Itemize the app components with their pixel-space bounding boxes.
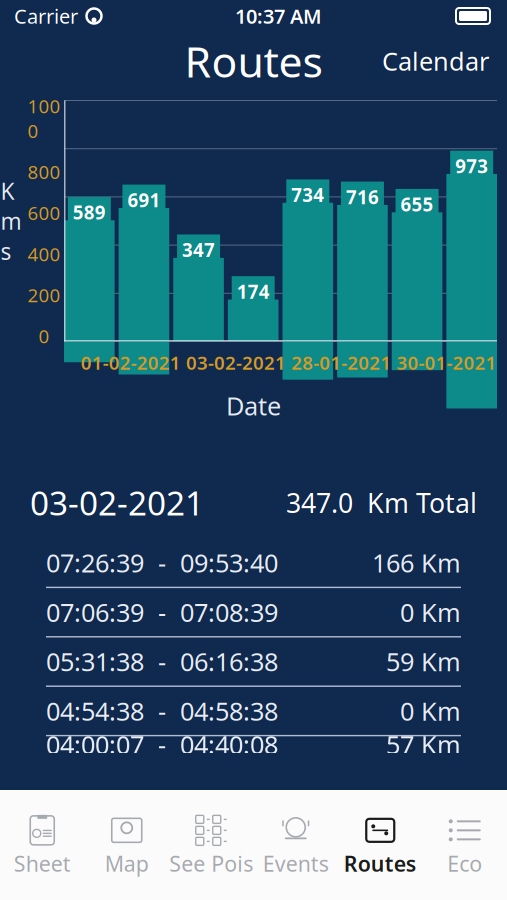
staticText: 0 Km [400, 694, 461, 728]
staticText: 04:58:38 [180, 694, 278, 728]
staticText: Events [263, 849, 329, 878]
staticText: - [144, 645, 180, 678]
button[interactable]: Routes [338, 806, 422, 884]
staticText: 200 [27, 283, 60, 307]
staticText: Km Total [353, 485, 477, 520]
button[interactable]: 05:31:38 [0, 637, 507, 687]
staticText: - [144, 595, 180, 629]
staticText: Calendar [382, 44, 489, 78]
staticText: 174 [237, 279, 270, 304]
staticText: 05:31:38 [46, 645, 144, 678]
staticText: 04:00:07 [46, 727, 144, 761]
staticText: 347 [182, 237, 215, 262]
staticText: 30-01-2021 [396, 350, 496, 375]
button[interactable]: Eco [422, 806, 507, 884]
staticText: See Pois [169, 849, 253, 878]
staticText: Carrier [14, 3, 78, 29]
staticText: Routes [344, 849, 417, 878]
staticText: 800 [27, 159, 60, 184]
staticText: 734 [291, 182, 324, 207]
staticText: - [144, 546, 180, 579]
button[interactable]: See Pois [169, 806, 253, 884]
button[interactable]: Events [253, 806, 338, 884]
staticText: - [144, 694, 180, 728]
staticText: 347.0 [286, 485, 353, 520]
staticText: 03-02-2021 [30, 480, 204, 525]
staticText: 28-01-2021 [291, 350, 391, 375]
staticText: - [144, 727, 180, 761]
staticText: 09:53:40 [180, 546, 278, 579]
button[interactable]: 07:06:39 [0, 588, 507, 637]
staticText: K m s [0, 176, 21, 266]
staticText: 01-02-2021 [81, 350, 181, 375]
staticText: 600 [27, 200, 60, 225]
staticText: 59 Km [386, 645, 461, 678]
staticText: 716 [346, 185, 379, 209]
staticText: Eco [447, 849, 482, 878]
staticText: Sheet [14, 849, 71, 878]
staticText: 07:08:39 [180, 595, 278, 629]
staticText: 07:06:39 [46, 595, 144, 629]
button[interactable]: Sheet [0, 806, 84, 884]
staticText: 04:54:38 [46, 694, 144, 728]
staticText: Date [226, 389, 281, 422]
staticText: 655 [401, 192, 434, 217]
staticText: 691 [127, 188, 160, 212]
button[interactable]: Calendar [372, 36, 499, 86]
staticText: 10:37 AM [235, 3, 322, 29]
staticText: 0 [38, 324, 49, 348]
staticText: 57 Km [386, 727, 461, 761]
staticText: 03-02-2021 [186, 350, 286, 375]
staticText: 06:16:38 [180, 645, 278, 678]
button[interactable]: 04:54:38 [0, 687, 507, 736]
staticText: 1000 [27, 93, 60, 143]
button[interactable]: Map [84, 806, 169, 884]
staticText: 0 Km [400, 595, 461, 629]
staticText: Routes [184, 33, 322, 89]
staticText: 400 [27, 241, 60, 266]
staticText: Map [105, 849, 149, 878]
staticText: 166 Km [372, 546, 461, 579]
staticText: 973 [455, 154, 488, 178]
staticText: 589 [73, 200, 106, 225]
staticText: 07:26:39 [46, 546, 144, 579]
button[interactable]: 07:26:39 [0, 539, 507, 588]
staticText: 04:40:08 [180, 727, 278, 761]
